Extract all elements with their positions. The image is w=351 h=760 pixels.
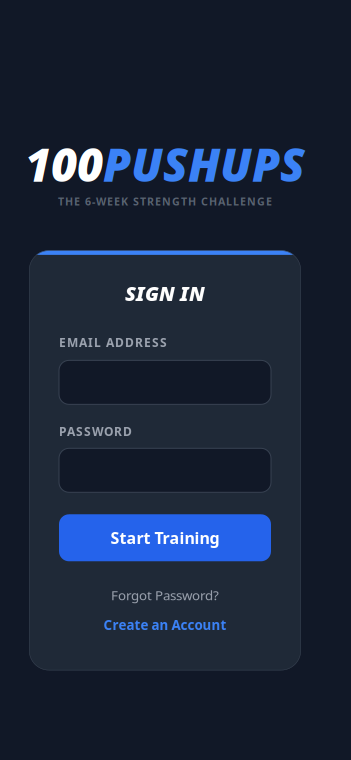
staticText: THE 6-WEEK STRENGTH CHALLENGE bbox=[58, 194, 272, 208]
button[interactable]: Start Training bbox=[59, 514, 271, 561]
staticText: Start Training bbox=[110, 527, 219, 548]
button[interactable]: Forgot Password? bbox=[59, 586, 271, 604]
staticText: PASSWORD bbox=[59, 423, 132, 439]
button[interactable]: Create an Account bbox=[59, 616, 271, 634]
staticText: SIGN IN bbox=[125, 280, 205, 306]
staticText: Create an Account bbox=[103, 616, 226, 634]
staticText: 100 bbox=[25, 134, 103, 194]
staticText: EMAIL ADDRESS bbox=[59, 334, 167, 350]
button[interactable]: Email address bbox=[59, 360, 271, 404]
button[interactable]: Password bbox=[59, 448, 271, 492]
staticText: Forgot Password? bbox=[111, 586, 219, 604]
staticText: PUSHUPS bbox=[103, 134, 305, 194]
